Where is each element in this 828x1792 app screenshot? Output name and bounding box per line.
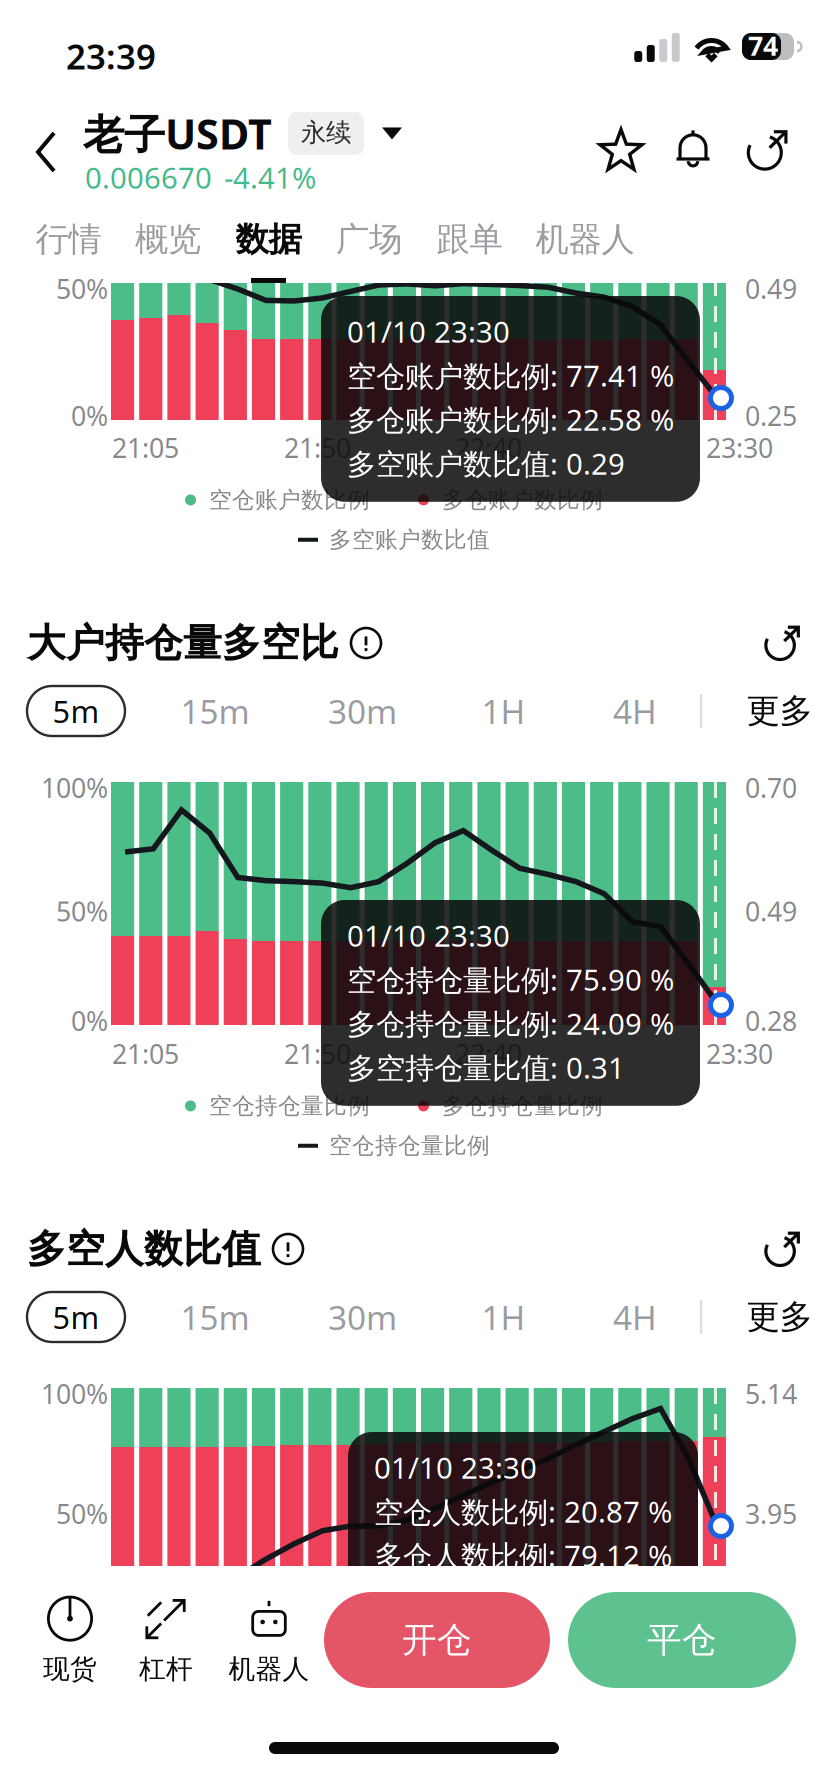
staticText: 4H <box>613 1295 657 1339</box>
staticText: 15m <box>180 1295 249 1339</box>
staticText: 23:39 <box>66 33 156 79</box>
button[interactable]: 30m <box>288 1292 437 1342</box>
staticText: 21:50 <box>284 1036 351 1071</box>
staticText: 1H <box>481 1295 525 1339</box>
staticText: 74 <box>748 28 778 63</box>
button[interactable]: 跟单 <box>419 218 520 284</box>
staticText: 空仓人数比例: 20.87 % <box>374 1492 672 1531</box>
staticText: 22:40 <box>455 1036 522 1071</box>
staticText: 0.49 <box>745 271 797 306</box>
staticText: 现货 <box>43 1653 97 1685</box>
staticText: 4H <box>613 689 657 733</box>
staticText: 多仓账户数比例: 22.58 % <box>347 400 674 439</box>
staticText: 数据 <box>235 219 301 260</box>
staticText: 老子USDT <box>83 106 272 161</box>
staticText: 50% <box>56 1496 108 1531</box>
staticText: 01/10 23:30 <box>347 312 510 351</box>
staticText: 100% <box>41 1376 108 1411</box>
staticText: 杠杆 <box>139 1653 193 1685</box>
staticText: 5m <box>52 1297 99 1337</box>
button[interactable]: 5m <box>27 1292 142 1342</box>
button[interactable]: 广场 <box>319 218 419 284</box>
staticText: 30m <box>328 1295 397 1339</box>
button[interactable]: 概览 <box>118 218 218 284</box>
staticText: 23:30 <box>706 430 773 465</box>
staticText: 多空账户数比值: 0.29 <box>347 444 625 483</box>
staticText: 广场 <box>336 219 402 260</box>
staticText: 机器人 <box>228 1653 309 1685</box>
staticText: 50% <box>56 893 108 929</box>
button[interactable]: 15m <box>142 1292 288 1342</box>
staticText: 多仓人数比例: 79.12 % <box>374 1536 672 1575</box>
staticText: 永续 <box>301 117 351 148</box>
staticText: 跟单 <box>436 219 502 260</box>
button[interactable]: 数据 <box>218 218 319 284</box>
staticText: 22:40 <box>455 430 522 465</box>
staticText: 0.25 <box>745 398 797 433</box>
button[interactable]: Share <box>745 1224 801 1274</box>
button[interactable]: 1H <box>437 686 570 736</box>
staticText: 30m <box>328 689 397 733</box>
button[interactable]: 老子USDT <box>83 106 402 161</box>
staticText: 15m <box>180 689 249 733</box>
button[interactable]: 更多 <box>702 686 828 736</box>
staticText: 行情 <box>35 219 101 260</box>
staticText: 机器人 <box>535 219 634 260</box>
button[interactable]: Share <box>745 618 801 668</box>
staticText: 多仓持仓量比例: 24.09 % <box>347 1004 674 1043</box>
staticText: 平仓 <box>647 1619 717 1661</box>
staticText: 0.70 <box>745 770 797 805</box>
staticText: 多空人数比值 <box>27 1225 261 1273</box>
staticText: 21:05 <box>112 1036 179 1071</box>
button[interactable]: 5m <box>27 686 142 736</box>
button[interactable]: 30m <box>288 686 437 736</box>
staticText: 空仓持仓量比例 <box>209 1092 370 1120</box>
staticText: 多仓账户数比例 <box>442 486 603 514</box>
staticText: 更多 <box>746 690 812 731</box>
button[interactable]: 机器人 <box>520 218 650 284</box>
button[interactable]: 杠杆 <box>118 1595 214 1685</box>
staticText: 0.49 <box>745 893 797 929</box>
button[interactable]: 平仓 <box>568 1592 796 1688</box>
button[interactable]: Share <box>745 128 789 172</box>
staticText: 5.14 <box>745 1376 797 1411</box>
button[interactable]: 1H <box>437 1292 570 1342</box>
button[interactable]: 现货 <box>22 1595 118 1685</box>
staticText: 01/10 23:30 <box>374 1448 537 1487</box>
staticText: 多空账户数比值 <box>329 526 490 554</box>
staticText: 0.006670 <box>85 158 212 197</box>
staticText: 100% <box>41 770 108 805</box>
staticText: 0% <box>71 1003 108 1038</box>
staticText: 大户持仓量多空比 <box>27 619 339 667</box>
staticText: 更多 <box>746 1296 812 1337</box>
staticText: 01/10 23:30 <box>347 916 510 955</box>
staticText: 21:50 <box>284 430 351 465</box>
staticText: 50% <box>56 271 108 306</box>
staticText: 23:30 <box>706 1036 773 1071</box>
button[interactable]: Back <box>28 124 65 181</box>
button[interactable]: 4H <box>570 1292 700 1342</box>
staticText: 概览 <box>135 219 201 260</box>
staticText: 0% <box>71 398 108 433</box>
staticText: 空仓账户数比例 <box>209 486 370 514</box>
staticText: 开仓 <box>402 1619 472 1661</box>
button[interactable]: 开仓 <box>324 1592 550 1688</box>
staticText: 21:05 <box>112 430 179 465</box>
staticText: 0.28 <box>745 1003 797 1038</box>
staticText: 多空持仓量比值: 0.31 <box>347 1048 625 1087</box>
button[interactable]: Price alerts <box>671 128 715 172</box>
staticText: 5m <box>52 691 99 731</box>
button[interactable]: 更多 <box>702 1292 828 1342</box>
button[interactable]: 机器人 <box>214 1595 324 1685</box>
staticText: 空仓账户数比例: 77.41 % <box>347 356 674 395</box>
staticText: 多仓持仓量比例 <box>442 1092 603 1120</box>
staticText: 空仓持仓量比例 <box>329 1132 490 1160</box>
button[interactable]: 15m <box>142 686 288 736</box>
button[interactable]: 4H <box>570 686 700 736</box>
staticText: 3.95 <box>745 1496 797 1531</box>
staticText: 空仓持仓量比例: 75.90 % <box>347 960 674 999</box>
button[interactable]: 行情 <box>19 218 118 284</box>
staticText: 1H <box>481 689 525 733</box>
staticText: -4.41% <box>224 158 316 197</box>
button[interactable]: Add to favorites <box>599 128 643 172</box>
